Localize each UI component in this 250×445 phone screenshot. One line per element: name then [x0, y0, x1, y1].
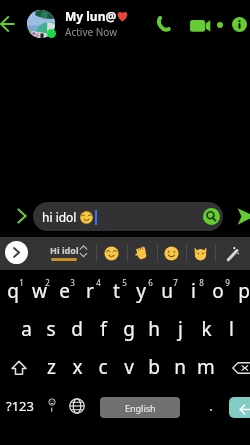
button[interactable]: 4 [85, 269, 111, 295]
button[interactable]: b [141, 354, 167, 380]
staticText: a [21, 316, 32, 342]
button[interactable]: 0 [239, 269, 250, 295]
button[interactable]: Video call [189, 17, 215, 43]
staticText: l [229, 316, 234, 342]
staticText: w [32, 278, 47, 304]
button[interactable]: v [116, 354, 142, 380]
staticText: c [98, 354, 108, 380]
staticText: t [113, 278, 120, 304]
button[interactable]: English [100, 397, 180, 418]
staticText: 8 [199, 277, 204, 288]
button[interactable]: Period [202, 398, 220, 416]
button[interactable]: 1 [8, 269, 34, 295]
staticText: u [161, 278, 173, 304]
staticText: s [46, 316, 56, 342]
staticText: p [238, 278, 250, 304]
button[interactable]: j [167, 316, 193, 342]
button[interactable]: x [64, 354, 90, 380]
staticText: e [59, 278, 70, 304]
button[interactable]: 6 [137, 269, 163, 295]
button[interactable]: Comma [42, 395, 62, 415]
button[interactable]: a [13, 316, 39, 342]
staticText: 7 [173, 277, 178, 288]
staticText: n [174, 354, 186, 380]
button[interactable]: n [167, 354, 193, 380]
button[interactable]: Search GIFs [203, 208, 220, 225]
staticText: y [136, 278, 146, 304]
staticText: x [72, 354, 83, 380]
button[interactable]: k [193, 316, 219, 342]
button[interactable]: Waving hand [127, 238, 155, 269]
staticText: b [148, 354, 160, 380]
button[interactable]: c [90, 354, 116, 380]
button[interactable]: Send [237, 208, 250, 225]
button[interactable]: z [38, 354, 64, 380]
staticText: r [86, 278, 94, 304]
button[interactable]: Smiling face [157, 238, 185, 269]
button[interactable]: y [128, 278, 154, 304]
button[interactable]: i [180, 278, 206, 304]
staticText: 3 [70, 277, 75, 288]
button[interactable]: f [90, 316, 116, 342]
staticText: My lun@ [65, 8, 117, 24]
button[interactable]: More options [15, 206, 35, 226]
button[interactable]: Shift [8, 357, 30, 379]
button[interactable]: Cat face [186, 238, 214, 269]
button[interactable]: t [103, 278, 129, 304]
button[interactable]: ?123 [2, 395, 38, 417]
staticText: ?123 [6, 397, 34, 415]
button[interactable]: u [154, 278, 180, 304]
staticText: o [212, 278, 224, 304]
button[interactable]: 5 [111, 269, 137, 295]
button[interactable]: g [116, 316, 142, 342]
staticText: 4 [96, 277, 101, 288]
button[interactable]: 9 [214, 269, 240, 295]
button[interactable]: Expand suggestions [5, 241, 28, 264]
button[interactable]: Relieved face [97, 238, 125, 269]
staticText: m [197, 354, 215, 380]
staticText: English [125, 402, 156, 414]
button[interactable]: Enter [229, 397, 250, 418]
staticText: g [123, 316, 135, 342]
button[interactable]: Info [232, 17, 247, 32]
button[interactable]: r [77, 278, 103, 304]
button[interactable]: 2 [34, 269, 60, 295]
button[interactable]: Call [156, 16, 172, 32]
button[interactable]: Change keyboard language [68, 397, 86, 415]
button[interactable]: Cycle suggestions [79, 245, 88, 258]
staticText: k [201, 316, 212, 342]
button[interactable]: o [205, 278, 231, 304]
staticText: Active Now [65, 25, 118, 39]
staticText: hi idol [42, 209, 77, 225]
staticText: 1 [19, 277, 24, 288]
staticText: h [148, 316, 160, 342]
button[interactable]: Back [0, 12, 24, 36]
button[interactable]: e [51, 278, 77, 304]
button[interactable]: 3 [59, 269, 85, 295]
button[interactable]: Backspace [231, 357, 250, 379]
staticText: 6 [148, 277, 153, 288]
button[interactable]: 7 [162, 269, 188, 295]
button[interactable]: Hi idol [44, 244, 84, 264]
button[interactable]: w [26, 278, 52, 304]
button[interactable]: hi idol [33, 202, 223, 231]
staticText: d [71, 316, 83, 342]
staticText: 9 [225, 277, 230, 288]
staticText: q [7, 278, 19, 304]
button[interactable]: d [64, 316, 90, 342]
button[interactable]: 8 [188, 269, 214, 295]
staticText: f [100, 316, 107, 342]
button[interactable]: q [0, 278, 26, 304]
button[interactable]: s [38, 316, 64, 342]
button[interactable]: p [231, 278, 250, 304]
staticText: Hi idol [50, 244, 79, 256]
staticText: 5 [122, 277, 127, 288]
button[interactable]: l [218, 316, 244, 342]
button[interactable]: Sticker suggestions [218, 238, 246, 269]
staticText: j [178, 316, 183, 342]
button[interactable]: h [141, 316, 167, 342]
staticText: 2 [45, 277, 50, 288]
staticText: i [191, 278, 196, 304]
staticText: z [47, 354, 56, 380]
button[interactable]: m [193, 354, 219, 380]
